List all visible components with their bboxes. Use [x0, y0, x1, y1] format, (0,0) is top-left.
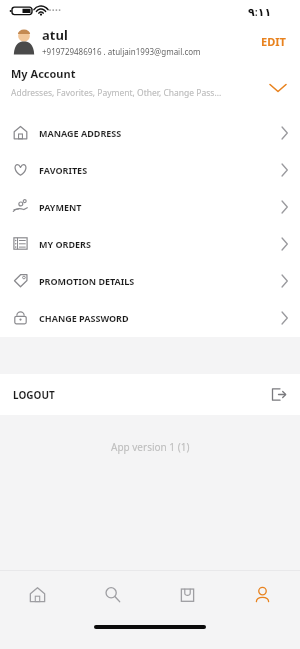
button[interactable]: Home [0, 571, 75, 617]
staticText: LOGOUT [13, 388, 55, 402]
staticText: Addresses, Favorites, Payment, Other, Ch… [11, 87, 222, 99]
staticText: App version 1 (1) [111, 440, 190, 454]
button[interactable]: CHANGE PASSWORD [0, 299, 300, 336]
staticText: +919729486916 . atuljain1993@gmail.com [42, 46, 201, 57]
button[interactable]: MANAGE ADDRESS [0, 114, 300, 151]
staticText: ٩:١١ [248, 4, 272, 19]
staticText: MY ORDERS [39, 238, 91, 250]
button[interactable]: Bag [150, 571, 225, 617]
staticText: FAVORITES [39, 164, 88, 176]
staticText: atul [42, 26, 68, 44]
staticText: CHANGE PASSWORD [39, 312, 129, 324]
staticText: EDIT [261, 34, 286, 49]
button[interactable]: Profile [225, 571, 300, 617]
button[interactable]: Search [75, 571, 150, 617]
button[interactable]: PAYMENT [0, 188, 300, 225]
button[interactable]: FAVORITES [0, 151, 300, 188]
staticText: PAYMENT [39, 201, 82, 213]
button[interactable]: EDIT [255, 30, 292, 53]
button[interactable]: My Account [0, 60, 300, 105]
staticText: MANAGE ADDRESS [39, 127, 122, 139]
staticText: PROMOTION DETAILS [39, 275, 135, 287]
staticText: My Account [11, 66, 76, 81]
button[interactable]: LOGOUT [0, 374, 300, 415]
other: Logout [271, 387, 286, 402]
button[interactable]: MY ORDERS [0, 225, 300, 262]
button[interactable]: PROMOTION DETAILS [0, 262, 300, 299]
